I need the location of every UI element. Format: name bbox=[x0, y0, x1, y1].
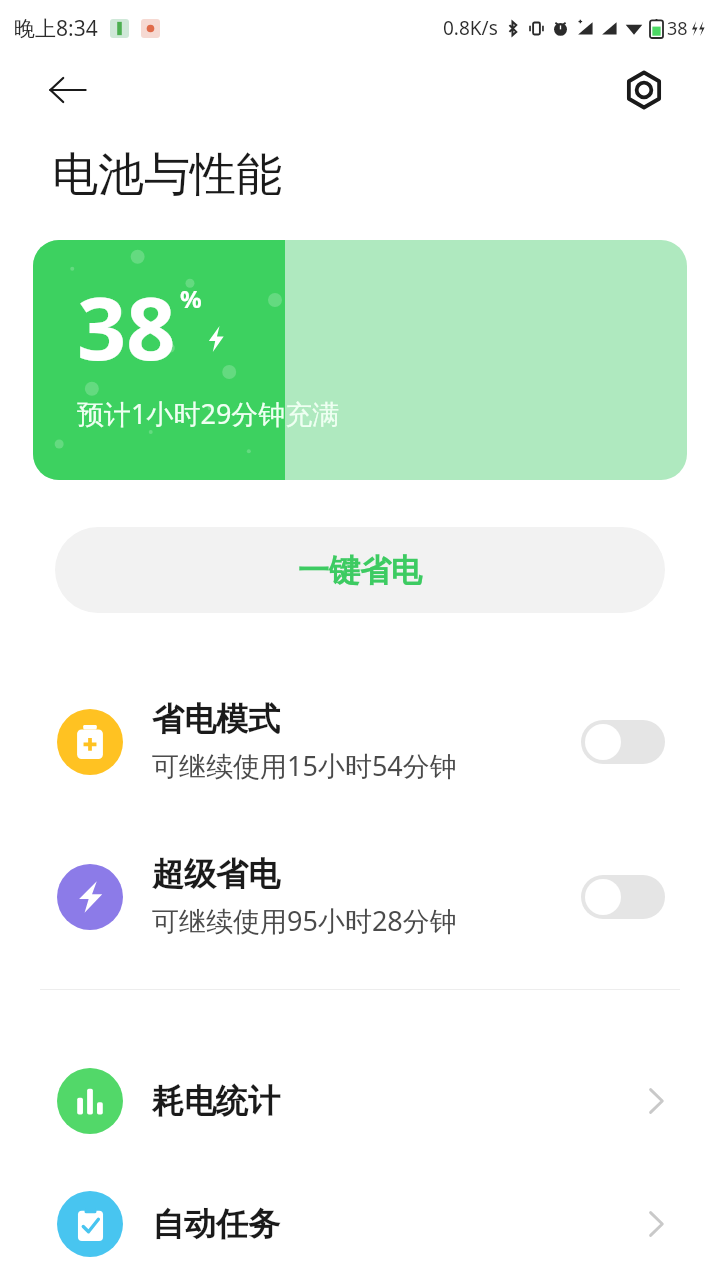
button[interactable]: 38 bbox=[33, 240, 687, 480]
button[interactable]: 省电模式 bbox=[581, 720, 665, 764]
button[interactable]: 省电模式 bbox=[0, 699, 720, 784]
button[interactable]: 超级省电 bbox=[0, 854, 720, 939]
staticText: 预计1小时29分钟充满 bbox=[77, 395, 340, 432]
staticText: 一键省电 bbox=[298, 551, 422, 590]
staticText: 耗电统计 bbox=[152, 1081, 647, 1121]
button[interactable]: Settings bbox=[618, 64, 670, 116]
button[interactable]: 自动任务 bbox=[0, 1191, 720, 1257]
button[interactable]: 一键省电 bbox=[55, 527, 665, 613]
staticText: 38 bbox=[667, 16, 688, 41]
staticText: 超级省电 bbox=[152, 854, 280, 894]
button[interactable]: 耗电统计 bbox=[0, 1068, 720, 1134]
staticText: 晚上8:34 bbox=[14, 14, 98, 43]
button[interactable]: Back bbox=[40, 62, 96, 118]
staticText: 电池与性能 bbox=[52, 146, 282, 204]
staticText: 0.8K/s bbox=[443, 15, 498, 41]
button[interactable]: 超级省电 bbox=[581, 875, 665, 919]
staticText: 38 bbox=[77, 268, 176, 385]
staticText: 可继续使用95小时28分钟 bbox=[152, 902, 457, 939]
staticText: 省电模式 bbox=[152, 699, 280, 739]
staticText: 自动任务 bbox=[152, 1204, 647, 1244]
staticText: 可继续使用15小时54分钟 bbox=[152, 747, 457, 784]
staticText: % bbox=[180, 282, 202, 315]
